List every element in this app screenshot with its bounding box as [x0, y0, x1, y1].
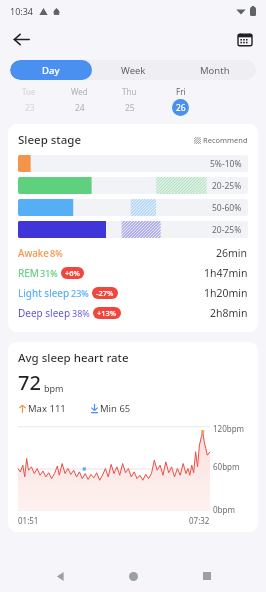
staticText: 26: [176, 102, 186, 114]
staticText: 25: [125, 102, 135, 114]
staticText: 2h8min: [210, 306, 248, 320]
staticText: 50-60%: [212, 202, 242, 214]
staticText: Light sleep: [18, 286, 70, 300]
staticText: Tue: [22, 86, 36, 97]
button[interactable]: Month: [174, 60, 256, 80]
staticText: Avg sleep heart rate: [18, 350, 129, 366]
staticText: -27%: [96, 288, 114, 298]
staticText: 120bpm: [213, 423, 245, 434]
staticText: Sleep stage: [18, 132, 82, 148]
staticText: Recommend: [203, 135, 248, 145]
button[interactable]: Calendar: [230, 24, 260, 54]
staticText: 38%: [72, 307, 90, 319]
staticText: 24: [75, 102, 85, 114]
staticText: 23%: [71, 287, 89, 299]
button[interactable]: Thu: [104, 86, 155, 116]
staticText: REM: [18, 266, 39, 280]
staticText: Wed: [71, 86, 88, 97]
staticText: 20-25%: [212, 224, 242, 236]
staticText: Thu: [122, 86, 137, 97]
staticText: 26min: [216, 246, 248, 260]
staticText: Deep sleep: [18, 306, 71, 320]
staticText: 8%: [50, 247, 63, 259]
staticText: 31%: [40, 267, 58, 279]
staticText: Max 111: [28, 402, 66, 415]
staticText: 5%-10%: [210, 158, 242, 170]
staticText: Min 65: [100, 402, 131, 415]
staticText: 72: [18, 369, 41, 396]
staticText: 1h47min: [204, 266, 248, 280]
staticText: Month: [200, 64, 230, 77]
staticText: 07:32: [189, 515, 210, 526]
staticText: 20-25%: [212, 180, 242, 192]
button[interactable]: Recents: [193, 562, 221, 590]
staticText: bpm: [44, 382, 64, 394]
button[interactable]: Back: [6, 24, 36, 54]
staticText: Awake: [18, 246, 49, 260]
button[interactable]: Wed: [54, 86, 104, 116]
button[interactable]: Day: [10, 60, 92, 80]
staticText: 01:51: [18, 515, 39, 526]
staticText: +13%: [97, 308, 117, 318]
staticText: Fri: [176, 86, 186, 97]
button[interactable]: Home: [119, 562, 147, 590]
staticText: Week: [121, 64, 146, 77]
staticText: 10:34: [10, 5, 34, 17]
staticText: Day: [42, 64, 60, 77]
staticText: +6%: [65, 268, 80, 278]
button[interactable]: Back: [46, 562, 74, 590]
staticText: 1h20min: [204, 286, 248, 300]
staticText: 0bpm: [213, 504, 235, 515]
staticText: 60bpm: [213, 461, 240, 472]
button[interactable]: Tue: [4, 86, 54, 116]
button[interactable]: Week: [92, 60, 174, 80]
staticText: 23: [25, 102, 35, 114]
button[interactable]: Fri: [155, 86, 206, 116]
